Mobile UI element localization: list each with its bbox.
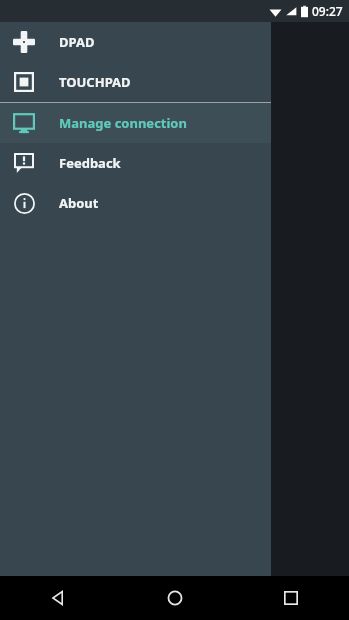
staticText: Manage connection xyxy=(59,114,187,132)
staticText: About xyxy=(59,194,99,212)
button[interactable]: Feedback xyxy=(0,143,271,183)
staticText: 09:27 xyxy=(312,3,343,19)
staticText: DPAD xyxy=(59,33,95,51)
button[interactable]: Back xyxy=(0,576,117,620)
button[interactable]: DPAD xyxy=(0,22,271,62)
button[interactable]: Home xyxy=(117,576,233,620)
button[interactable]: TOUCHPAD xyxy=(0,62,271,102)
button[interactable]: About xyxy=(0,183,271,223)
staticText: TOUCHPAD xyxy=(59,73,131,91)
staticText: Feedback xyxy=(59,154,121,172)
button[interactable]: Recents xyxy=(233,576,349,620)
button[interactable]: Manage connection xyxy=(0,103,271,143)
